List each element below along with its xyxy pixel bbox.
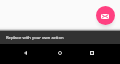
button[interactable]: Replace with your own action: [0, 31, 120, 44]
button[interactable]: Home: [47, 46, 72, 60]
button[interactable]: Back: [13, 46, 38, 60]
button[interactable]: Recent apps: [79, 46, 104, 60]
button[interactable]: Send email: [96, 6, 115, 25]
staticText: Replace with your own action: [6, 35, 64, 41]
